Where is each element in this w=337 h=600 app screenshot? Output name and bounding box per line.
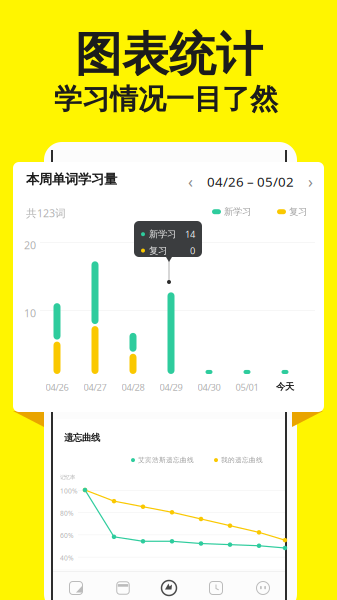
staticText: 80% <box>60 509 74 518</box>
staticText: 04/27 <box>83 381 106 393</box>
staticText: 新学习 <box>224 206 251 217</box>
staticText: 本周单词学习量 <box>26 171 117 187</box>
staticText: 04/26 <box>45 381 68 393</box>
staticText: 60% <box>60 531 74 540</box>
staticText: 复习 <box>289 206 307 217</box>
staticText: 记忆率 <box>60 474 75 481</box>
staticText: 04/26 – 05/02 <box>207 173 294 190</box>
staticText: 遗忘曲线 <box>64 432 100 443</box>
button[interactable]: ‹ <box>188 171 313 192</box>
staticText: 40% <box>60 553 74 562</box>
staticText: ‹ <box>188 171 193 192</box>
staticText: 100% <box>60 486 78 495</box>
staticText: 新学习 <box>149 228 176 240</box>
staticText: 我的遗忘曲线 <box>221 456 263 464</box>
staticText: 04/30 <box>197 381 220 393</box>
button[interactable]: Plan <box>63 575 89 600</box>
staticText: 学习情况一目了然 <box>54 82 278 116</box>
staticText: 0 <box>190 244 195 257</box>
staticText: 图表统计 <box>75 26 263 83</box>
staticText: 14 <box>185 228 195 240</box>
button[interactable]: Me <box>250 575 276 600</box>
button[interactable]: Review <box>203 575 229 600</box>
button[interactable]: Notebook <box>110 575 136 600</box>
staticText: 05/01 <box>235 381 258 393</box>
staticText: › <box>308 171 313 192</box>
staticText: 20 <box>24 238 36 252</box>
staticText: 艾宾浩斯遗忘曲线 <box>138 456 194 464</box>
staticText: 04/29 <box>159 381 182 393</box>
staticText: 10 <box>24 306 36 320</box>
staticText: 04/28 <box>121 381 144 393</box>
staticText: 今天 <box>276 381 294 392</box>
button[interactable]: Study <box>156 575 182 600</box>
staticText: 复习 <box>149 245 167 256</box>
staticText: 共123词 <box>26 206 66 220</box>
